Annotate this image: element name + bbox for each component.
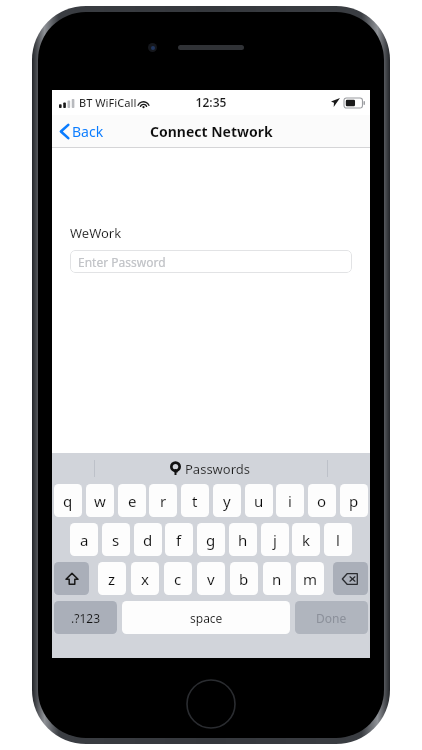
button[interactable]: l (324, 523, 352, 556)
staticText: m (303, 569, 318, 589)
button[interactable]: k (292, 523, 320, 556)
staticText: h (238, 530, 248, 550)
staticText: t (192, 491, 198, 511)
button[interactable]: space (122, 601, 290, 634)
staticText: a (80, 530, 89, 550)
button[interactable]: u (245, 484, 273, 517)
button[interactable]: Done (295, 601, 368, 634)
button[interactable]: f (165, 523, 193, 556)
staticText: Passwords (185, 460, 251, 478)
staticText: WeWork (70, 224, 122, 242)
button[interactable]: g (197, 523, 225, 556)
staticText: w (94, 491, 106, 511)
button[interactable]: q (54, 484, 82, 517)
button[interactable]: Enter Password (70, 250, 352, 273)
button[interactable]: y (213, 484, 241, 517)
staticText: 12:35 (52, 94, 370, 110)
staticText: y (223, 491, 231, 511)
staticText: c (174, 569, 182, 589)
staticText: s (112, 530, 120, 550)
staticText: d (143, 530, 153, 550)
button[interactable]: a (70, 523, 98, 556)
button[interactable]: m (296, 562, 324, 595)
button[interactable]: .?123 (54, 601, 117, 634)
staticText: .?123 (71, 610, 101, 626)
button[interactable]: c (164, 562, 192, 595)
staticText: f (176, 530, 182, 550)
staticText: Enter Password (78, 254, 166, 270)
button[interactable]: Back (52, 115, 114, 148)
staticText: space (190, 610, 223, 626)
staticText: v (207, 569, 215, 589)
staticText: k (302, 530, 311, 550)
staticText: g (206, 530, 216, 550)
staticText: x (141, 569, 149, 589)
staticText: Back (72, 122, 104, 141)
button[interactable]: t (181, 484, 209, 517)
button[interactable]: d (134, 523, 162, 556)
staticText: i (288, 491, 292, 511)
button[interactable]: b (230, 562, 258, 595)
staticText: e (128, 491, 137, 511)
button[interactable]: x (131, 562, 159, 595)
button[interactable]: o (308, 484, 336, 517)
staticText: l (336, 530, 340, 550)
button[interactable]: n (263, 562, 291, 595)
button[interactable]: p (340, 484, 368, 517)
staticText: Done (316, 610, 347, 626)
staticText: r (160, 491, 167, 511)
button[interactable]: i (276, 484, 304, 517)
staticText: q (63, 491, 73, 511)
staticText: n (272, 569, 282, 589)
button[interactable]: w (86, 484, 114, 517)
staticText: b (239, 569, 249, 589)
button[interactable]: s (102, 523, 130, 556)
button[interactable]: Passwords (161, 453, 261, 484)
staticText: u (254, 491, 264, 511)
button[interactable]: Shift (54, 562, 89, 595)
staticText: j (273, 530, 277, 550)
staticText: Connect Network (150, 122, 273, 141)
button[interactable]: j (261, 523, 289, 556)
staticText: BT WiFiCall (79, 95, 137, 110)
staticText: z (108, 569, 116, 589)
button[interactable]: v (197, 562, 225, 595)
staticText: p (349, 491, 359, 511)
button[interactable]: Backspace (333, 562, 368, 595)
button[interactable]: z (98, 562, 126, 595)
button[interactable]: r (149, 484, 177, 517)
staticText: o (317, 491, 327, 511)
button[interactable]: h (229, 523, 257, 556)
button[interactable]: e (118, 484, 146, 517)
